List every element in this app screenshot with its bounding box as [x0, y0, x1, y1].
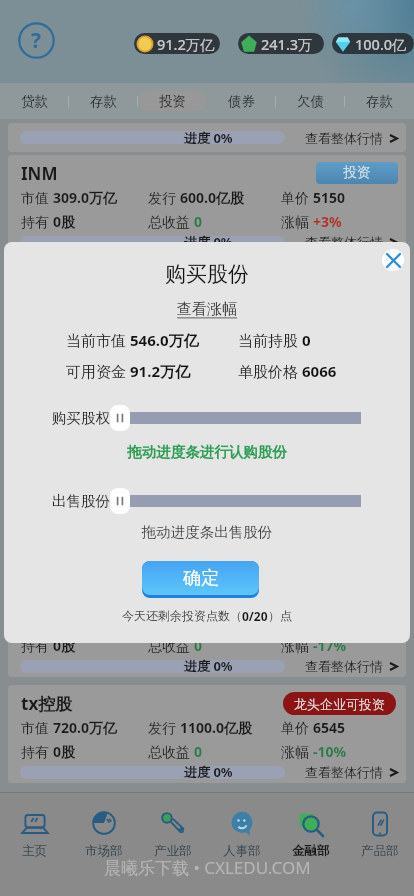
button[interactable]: 投资	[316, 480, 398, 502]
button[interactable]: ZY地产	[8, 367, 406, 465]
staticText: INM	[21, 162, 58, 185]
staticText: 进度 0%	[184, 763, 233, 781]
staticText: 当前持股	[238, 330, 302, 350]
button[interactable]: 查看整体行情	[305, 234, 398, 250]
staticText: 存款	[366, 93, 393, 110]
staticText: 投资	[159, 93, 186, 110]
button[interactable]: 91.2万亿	[134, 33, 220, 54]
staticText: 单价	[281, 612, 313, 631]
button[interactable]: 241.3万	[238, 33, 324, 54]
staticText: 0/20	[242, 608, 268, 624]
staticText: 金融部	[292, 843, 330, 859]
staticText: 持有	[21, 212, 53, 231]
staticText: 发行	[148, 294, 180, 313]
button[interactable]: 进度 0%	[8, 123, 406, 152]
staticText: 发行	[148, 506, 180, 525]
staticText: +3%	[313, 212, 342, 231]
staticText: 主页	[22, 843, 47, 859]
staticText: 进度 0%	[184, 129, 233, 147]
button[interactable]: 产业部	[138, 808, 207, 859]
button[interactable]: 确定	[142, 561, 259, 595]
staticText: 产业部	[154, 843, 192, 859]
button[interactable]: 查看整体行情	[305, 658, 398, 674]
button[interactable]: 100.0亿	[332, 33, 414, 54]
button[interactable]: 债券	[207, 83, 276, 119]
staticText: 今天还剩余投资点数（	[122, 608, 242, 623]
button[interactable]: INM	[8, 155, 406, 253]
staticText: -17%	[313, 636, 347, 655]
staticText: 投资	[343, 482, 371, 500]
button[interactable]: SJ银行	[8, 579, 406, 677]
staticText: 涨幅	[281, 742, 313, 761]
staticText: 91.2万亿	[157, 34, 215, 54]
button[interactable]: 存款	[69, 83, 138, 119]
button[interactable]: MT集团	[8, 473, 406, 571]
staticText: 5150	[313, 188, 346, 207]
button[interactable]: Slider handle	[110, 405, 130, 431]
button[interactable]: 欠债	[276, 83, 345, 119]
staticText: 查看整体行情	[305, 658, 383, 674]
staticText: 产品部	[361, 843, 399, 859]
staticText: 720.0万亿	[53, 718, 117, 737]
button[interactable]: 投资	[316, 162, 398, 184]
staticText: 0股	[53, 212, 76, 231]
staticText: 0股	[53, 636, 76, 655]
staticText: 单价	[281, 506, 313, 525]
staticText: 总收益	[148, 742, 194, 761]
staticText: 0股	[53, 424, 76, 443]
button[interactable]: 投资	[316, 374, 398, 396]
button[interactable]: 产品部	[345, 808, 414, 859]
staticText: 880.0亿股	[180, 400, 244, 419]
button[interactable]: 市场部	[69, 808, 138, 859]
button[interactable]: Slider handle	[110, 488, 130, 514]
button[interactable]: 投资	[138, 83, 207, 119]
button[interactable]: GX科技	[8, 261, 406, 359]
staticText: 4600	[313, 506, 346, 525]
staticText: 龙头企业可投资	[294, 696, 385, 712]
button[interactable]: 查看整体行情	[305, 340, 398, 356]
button[interactable]: 贷款	[0, 83, 69, 119]
button[interactable]: 人事部	[207, 808, 276, 859]
staticText: 单价	[281, 400, 313, 419]
staticText: 查看整体行情	[305, 340, 383, 356]
staticText: 涨幅	[281, 212, 313, 231]
staticText: 0股	[53, 318, 76, 337]
staticText: 309.0万亿	[53, 188, 117, 207]
staticText: 贷款	[21, 93, 48, 110]
staticText: 当前市值	[66, 330, 130, 350]
button[interactable]: 主页	[0, 808, 69, 859]
staticText: 确定	[183, 567, 219, 590]
staticText: -10%	[313, 742, 347, 761]
staticText: 市值	[21, 718, 53, 737]
staticText: ）点	[268, 608, 292, 623]
staticText: ?	[31, 26, 42, 55]
button[interactable]: 查看整体行情	[305, 764, 398, 780]
staticText: 持有	[21, 742, 53, 761]
staticText: 欠债	[297, 93, 324, 110]
button[interactable]: Help	[18, 22, 55, 59]
staticText: 0股	[53, 742, 76, 761]
button[interactable]: 存款	[345, 83, 414, 119]
button[interactable]: Close	[382, 249, 404, 271]
button[interactable]: 查看涨幅	[177, 300, 237, 319]
staticText: 总收益	[148, 212, 194, 231]
staticText: 0	[194, 636, 203, 655]
button[interactable]: 金融部	[276, 808, 345, 859]
button[interactable]: 龙头企业可投资	[283, 692, 396, 715]
button[interactable]: 查看整体行情	[305, 130, 398, 146]
button[interactable]: tx控股	[8, 685, 406, 783]
staticText: 市值	[21, 188, 53, 207]
button[interactable]: 投资	[316, 268, 398, 290]
